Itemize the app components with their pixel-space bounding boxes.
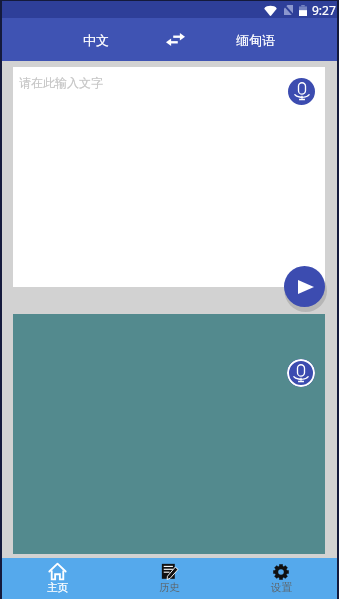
staticText: 9:27 [312,2,336,18]
staticText: 中文 [83,32,109,48]
button[interactable] [13,314,325,554]
staticText: 主页 [47,581,68,594]
staticText: 请在此输入文字 [19,75,103,90]
button[interactable]: Swap languages [157,18,193,61]
button[interactable]: Speak translation [287,359,315,387]
button[interactable]: 设置 [225,558,337,599]
button[interactable]: 主页 [2,558,113,599]
staticText: 设置 [271,581,292,594]
button[interactable]: 历史 [113,558,225,599]
button[interactable]: Translate [284,266,325,307]
button[interactable]: Voice input [288,78,315,105]
button[interactable]: 中文 [64,18,128,61]
button[interactable]: 缅甸语 [223,18,287,61]
staticText: 历史 [159,581,180,594]
staticText: 缅甸语 [236,32,275,48]
button[interactable]: 请在此输入文字 [13,67,325,287]
